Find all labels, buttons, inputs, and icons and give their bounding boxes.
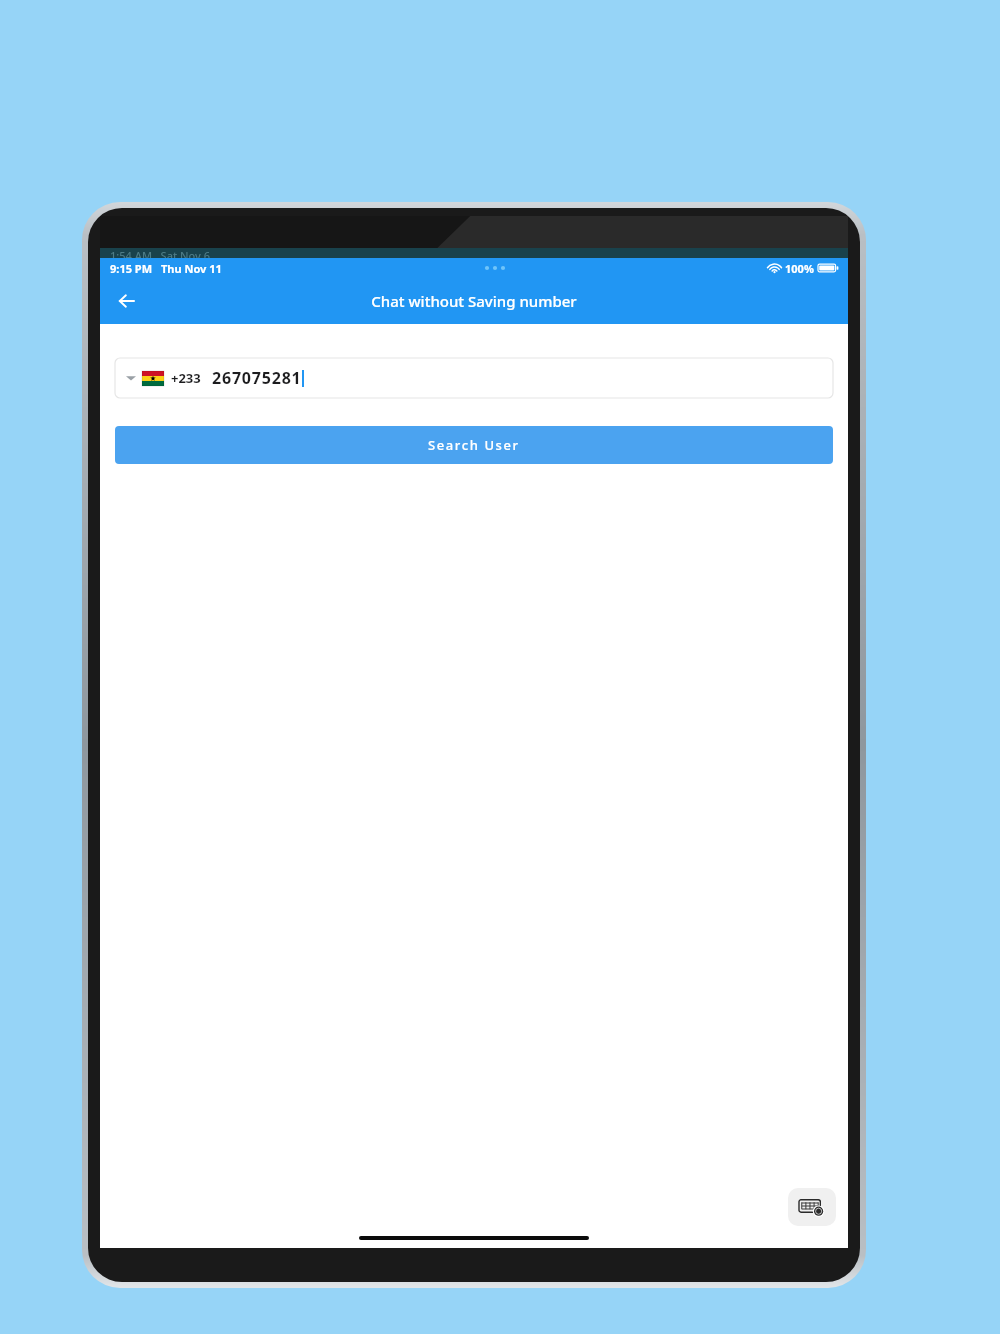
button[interactable]: Search User bbox=[115, 426, 833, 464]
staticText: 100% bbox=[785, 261, 814, 276]
button[interactable]: Switch keyboard bbox=[788, 1188, 836, 1226]
staticText: 9:15 PM bbox=[110, 261, 153, 276]
staticText: Chat without Saving number bbox=[371, 291, 577, 311]
staticText: +233 bbox=[171, 369, 201, 387]
staticText: 1:54 AM Sat Nov 6 bbox=[110, 248, 211, 258]
staticText: Search User bbox=[428, 436, 520, 454]
button[interactable]: Select country code bbox=[115, 358, 833, 398]
staticText: Thu Nov 11 bbox=[161, 261, 222, 276]
button[interactable]: Back bbox=[106, 280, 148, 322]
button[interactable]: Select country code bbox=[123, 370, 139, 386]
staticText: 267075281 bbox=[212, 367, 302, 389]
